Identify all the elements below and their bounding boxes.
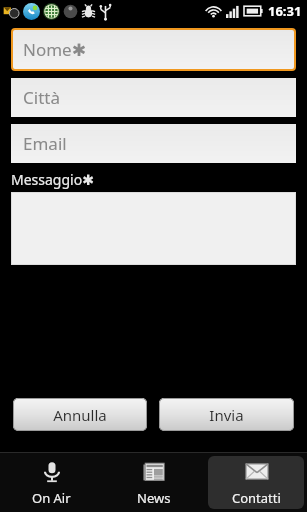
other: Contatti xyxy=(245,462,269,481)
button[interactable]: News xyxy=(106,456,202,509)
button[interactable]: Invia xyxy=(159,398,294,431)
button[interactable]: Città xyxy=(11,78,296,117)
button[interactable]: Nome✱ xyxy=(13,30,294,69)
staticText: 16:31 xyxy=(268,2,302,20)
button[interactable]: Annulla xyxy=(13,398,147,431)
staticText: Nome✱ xyxy=(23,38,86,61)
button[interactable]: Contatti xyxy=(208,456,304,509)
staticText: Messaggio✱ xyxy=(11,170,94,189)
staticText: Contatti xyxy=(232,489,281,507)
staticText: Invia xyxy=(209,405,244,425)
staticText: On Air xyxy=(32,489,71,507)
staticText: Città xyxy=(23,86,60,109)
staticText: Annulla xyxy=(53,405,107,425)
button[interactable]: On Air xyxy=(3,456,100,509)
other: On Air xyxy=(41,461,63,483)
other: News xyxy=(143,461,165,483)
button[interactable]: Email xyxy=(11,124,296,163)
staticText: Email xyxy=(23,132,67,155)
button[interactable] xyxy=(11,192,296,265)
staticText: News xyxy=(137,489,171,507)
